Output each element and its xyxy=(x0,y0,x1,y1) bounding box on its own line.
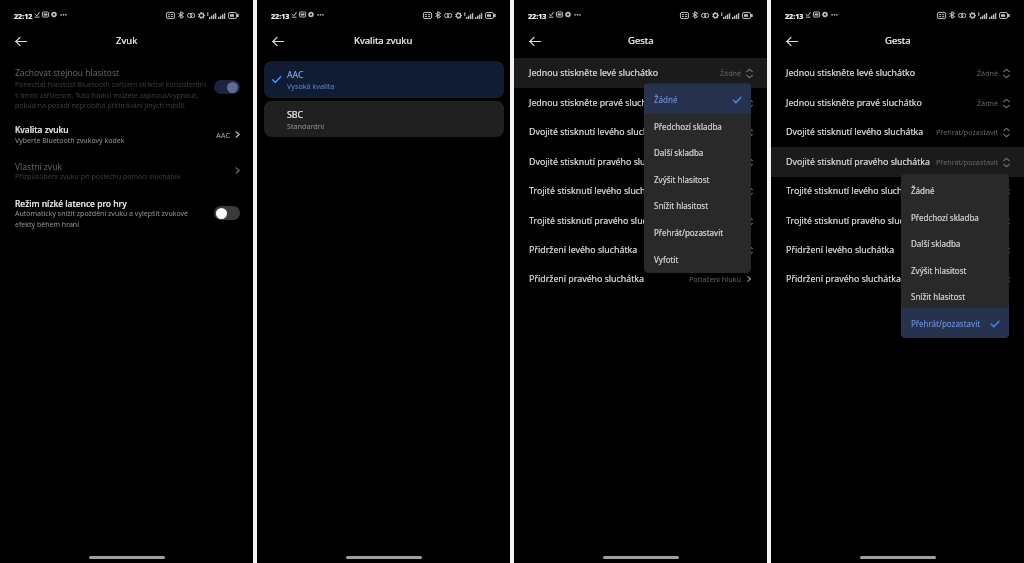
staticText: Jednou stiskněte pravé sluchátko xyxy=(529,97,665,109)
button[interactable]: Jednou stiskněte pravé sluchátko xyxy=(514,88,767,118)
staticText: Vyfotit xyxy=(654,254,679,265)
button[interactable]: Žádné xyxy=(901,177,1009,204)
button[interactable]: Přehrát/pozastavit xyxy=(901,310,1009,337)
button[interactable]: Režim nízké latence pro hry xyxy=(0,191,253,233)
staticText: Zvýšit hlasitost xyxy=(654,174,710,185)
staticText: Další skladba xyxy=(654,147,704,158)
button[interactable]: Switch on xyxy=(214,80,240,94)
staticText: AAC xyxy=(216,130,231,140)
button[interactable]: Další skladba xyxy=(901,230,1009,257)
staticText: 22:13 xyxy=(528,11,547,21)
button[interactable]: Zvýšit hlasitost xyxy=(644,166,751,193)
staticText: Trojité stisknutí levého sluchátka xyxy=(786,185,921,197)
staticText: Žádné xyxy=(977,68,999,78)
button[interactable]: Jednou stiskněte levé sluchátko xyxy=(771,58,1024,88)
staticText: Žádné xyxy=(720,127,742,137)
staticText: Trojité stisknutí levého sluchátka xyxy=(529,185,664,197)
staticText: Přidržení levého sluchátka xyxy=(529,244,638,256)
button[interactable]: Další skladba xyxy=(644,139,751,166)
staticText: Další skladba xyxy=(911,238,961,249)
button[interactable]: Trojité stisknutí levého sluchátka xyxy=(771,176,1024,206)
staticText: Trojité stisknutí pravého sluchátka xyxy=(529,215,670,227)
staticText: Přehrát/pozastavit xyxy=(911,318,981,329)
button[interactable]: Jednou stiskněte levé sluchátko xyxy=(514,58,767,88)
staticText: AAC xyxy=(287,69,304,81)
staticText: Dvojité stisknutí pravého sluchátka xyxy=(786,156,930,168)
staticText: Dvojité stisknutí pravého sluchátka xyxy=(529,156,673,168)
button[interactable]: Back xyxy=(266,29,290,53)
button[interactable]: Vyfotit xyxy=(644,246,751,273)
button[interactable]: Zvýšit hlasitost xyxy=(901,257,1009,284)
staticText: Jednou stiskněte levé sluchátko xyxy=(529,67,659,79)
staticText: Snížit hlasitost xyxy=(654,200,709,211)
staticText: Přehrát/pozastavit xyxy=(936,157,999,167)
staticText: Přidržení levého sluchátka xyxy=(786,244,895,256)
button[interactable]: Trojité stisknutí levého sluchátka xyxy=(514,176,767,206)
button[interactable]: Trojité stisknutí pravého sluchátka xyxy=(514,206,767,236)
button[interactable]: Snížit hlasitost xyxy=(644,192,751,219)
staticText: Standardní xyxy=(287,121,325,131)
button[interactable]: Dvojité stisknutí levého sluchátka xyxy=(771,117,1024,147)
staticText: Žádné xyxy=(720,98,742,108)
staticText: Žádné xyxy=(977,216,999,226)
staticText: Žádné xyxy=(977,98,999,108)
button[interactable]: Dvojité stisknutí levého sluchátka xyxy=(514,117,767,147)
staticText: Snížit hlasitost xyxy=(911,291,966,302)
staticText: Ponechat hlasitost Bluetooth zařízení st… xyxy=(15,80,211,110)
button[interactable]: Přidržení pravého sluchátka xyxy=(514,264,767,294)
staticText: Zvuk xyxy=(116,34,138,47)
button[interactable]: Zachovat stejnou hlasitost xyxy=(0,61,253,110)
staticText: Dvojité stisknutí levého sluchátka xyxy=(529,126,667,138)
staticText: Gesta xyxy=(885,34,911,47)
button[interactable]: Jednou stiskněte pravé sluchátko xyxy=(771,88,1024,118)
staticText: Vlastní zvuk xyxy=(15,161,62,173)
button[interactable]: Vlastní zvuk xyxy=(0,154,253,186)
staticText: Trojité stisknutí pravého sluchátka xyxy=(786,215,927,227)
button[interactable]: Back xyxy=(523,29,547,53)
button[interactable]: SBC xyxy=(264,101,504,137)
button[interactable]: Předchozí skladba xyxy=(644,113,751,140)
button[interactable]: Přidržení levého sluchátka xyxy=(771,235,1024,265)
staticText: Automaticky snížit zpoždění zvuku a vyle… xyxy=(15,209,201,229)
button[interactable]: Předchozí skladba xyxy=(901,204,1009,231)
staticText: Jednou stiskněte levé sluchátko xyxy=(786,67,916,79)
button[interactable]: Přidržení pravého sluchátka xyxy=(771,264,1024,294)
button[interactable]: Trojité stisknutí pravého sluchátka xyxy=(771,206,1024,236)
staticText: Předchozí skladba xyxy=(911,212,979,223)
button[interactable]: Snížit hlasitost xyxy=(901,283,1009,310)
staticText: Zvýšit hlasitost xyxy=(911,265,967,276)
staticText: 22:13 xyxy=(785,11,804,21)
button[interactable]: Back xyxy=(9,29,33,53)
staticText: Kvalita zvuku xyxy=(354,34,413,47)
staticText: Přidržení pravého sluchátka xyxy=(529,273,644,285)
staticText: 22:12 xyxy=(14,11,33,21)
staticText: Kvalita zvuku xyxy=(15,124,69,136)
staticText: Žádné xyxy=(720,68,742,78)
button[interactable]: AAC xyxy=(264,61,504,98)
staticText: Přidržení pravého sluchátka xyxy=(786,273,901,285)
button[interactable]: Back xyxy=(780,29,804,53)
staticText: Jednou stiskněte pravé sluchátko xyxy=(786,97,922,109)
button[interactable]: Přehrát/pozastavit xyxy=(644,219,751,246)
staticText: Gesta xyxy=(628,34,654,47)
staticText: Potlačení hluku xyxy=(689,274,741,284)
staticText: Přehrát/pozastavit xyxy=(654,227,724,238)
button[interactable]: Kvalita zvuku xyxy=(0,117,253,149)
button[interactable]: Dvojité stisknutí pravého sluchátka xyxy=(771,147,1024,177)
button[interactable]: Switch off xyxy=(214,206,240,220)
staticText: Přehrát/pozastavit xyxy=(936,127,999,137)
button[interactable]: Žádné xyxy=(644,86,751,113)
button[interactable]: Dvojité stisknutí pravého sluchátka xyxy=(514,147,767,177)
staticText: Vysoká kvalita xyxy=(287,81,335,91)
staticText: SBC xyxy=(287,109,304,121)
staticText: Dvojité stisknutí levého sluchátka xyxy=(786,126,924,138)
staticText: Vyberte Bluetooth zvukový kodek xyxy=(15,136,125,146)
button[interactable]: Přidržení levého sluchátka xyxy=(514,235,767,265)
staticText: 22:13 xyxy=(271,11,290,21)
